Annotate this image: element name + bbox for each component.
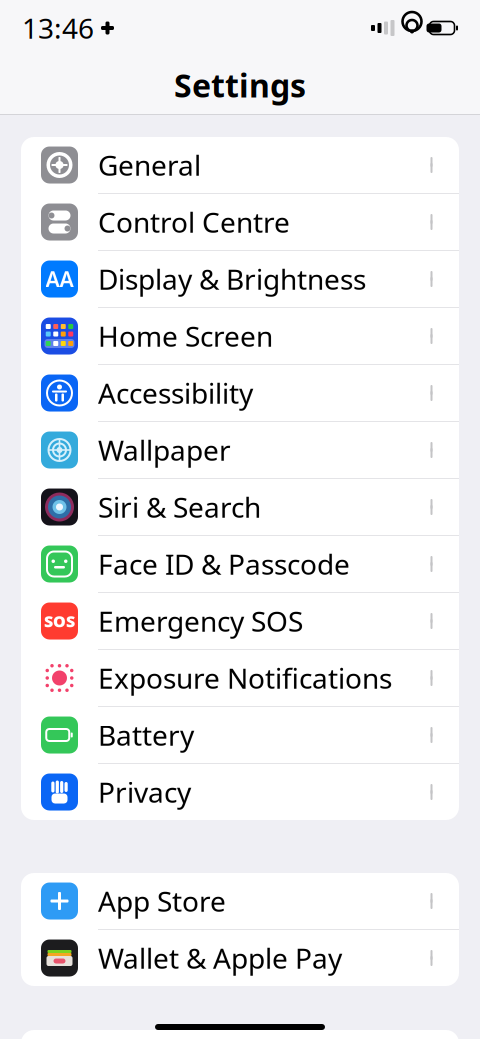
- button[interactable]: Battery: [21, 707, 459, 764]
- button[interactable]: Siri & Search: [21, 479, 459, 536]
- staticText: Face ID & Passcode: [98, 545, 350, 583]
- button[interactable]: Control Centre: [21, 194, 459, 251]
- button[interactable]: App Store: [21, 873, 459, 930]
- staticText: Battery: [98, 716, 194, 754]
- staticText: Exposure Notifications: [98, 659, 392, 697]
- staticText: SOS: [44, 610, 75, 632]
- button[interactable]: Wallpaper: [21, 422, 459, 479]
- button[interactable]: AA: [21, 251, 459, 308]
- staticText: App Store: [98, 882, 226, 920]
- staticText: Display & Brightness: [98, 260, 366, 298]
- staticText: Siri & Search: [98, 488, 261, 526]
- button[interactable]: Exposure Notifications: [21, 650, 459, 707]
- staticText: Emergency SOS: [98, 602, 303, 640]
- button[interactable]: Home Screen: [21, 308, 459, 365]
- staticText: Home Screen: [98, 317, 273, 355]
- button[interactable]: Wallet & Apple Pay: [21, 930, 459, 986]
- staticText: Privacy: [98, 773, 191, 811]
- staticText: Wallet & Apple Pay: [98, 939, 342, 977]
- staticText: 13:46: [22, 9, 94, 47]
- staticText: Settings: [174, 64, 306, 106]
- staticText: General: [98, 146, 201, 184]
- staticText: Accessibility: [98, 374, 253, 412]
- button[interactable]: Accessibility: [21, 365, 459, 422]
- staticText: AA: [45, 265, 73, 293]
- button[interactable]: General: [21, 137, 459, 194]
- button[interactable]: SOS: [21, 593, 459, 650]
- button[interactable]: Privacy: [21, 764, 459, 820]
- button[interactable]: Face ID & Passcode: [21, 536, 459, 593]
- staticText: Control Centre: [98, 203, 290, 241]
- staticText: Wallpaper: [98, 431, 231, 469]
